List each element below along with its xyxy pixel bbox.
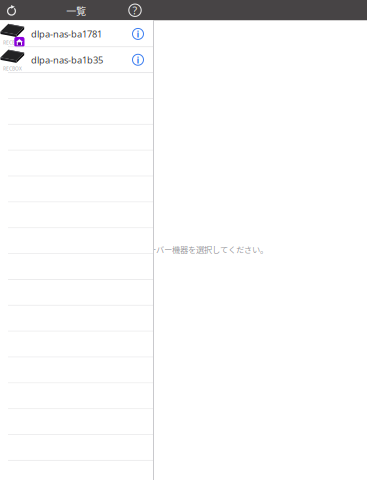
staticText: i (136, 28, 139, 40)
staticText: RECBOX (3, 39, 22, 46)
staticText: サーバー機器を選択してください。 (140, 243, 268, 255)
button[interactable]: RECBOX (0, 47, 153, 73)
staticText: i (136, 53, 139, 66)
staticText: RECBOX (3, 65, 22, 72)
button[interactable]: RECBOX (0, 21, 153, 47)
button[interactable]: Help (122, 0, 148, 20)
staticText: dlpa-nas-ba1b35 (31, 53, 103, 66)
staticText: dlpa-nas-ba1781 (31, 28, 102, 40)
staticText: ? (132, 3, 137, 17)
staticText: 一覧 (66, 3, 86, 18)
button[interactable]: Refresh (0, 0, 23, 20)
